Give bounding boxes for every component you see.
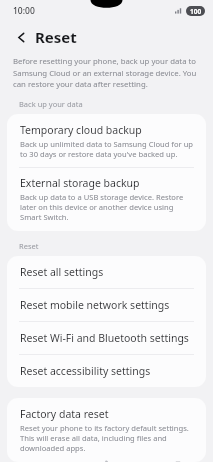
staticText: Reset accessibility settings	[20, 364, 151, 378]
staticText: 100	[190, 7, 202, 16]
staticText: Reset	[35, 27, 77, 47]
staticText: Factory data reset	[20, 407, 109, 421]
staticText: Back up unlimited data to Samsung Cloud …	[20, 139, 195, 159]
staticText: Reset	[19, 241, 39, 251]
staticText: Before resetting your phone, back up you…	[13, 56, 200, 89]
button[interactable]: Reset all settings	[7, 256, 206, 288]
staticText: External storage backup	[20, 176, 140, 190]
staticText: Reset your phone to its factory default …	[20, 423, 195, 453]
button[interactable]: Reset Wi-Fi and Bluetooth settings	[7, 322, 206, 354]
button[interactable]: External storage backup	[7, 168, 206, 231]
staticText: Reset mobile network settings	[20, 298, 170, 312]
button[interactable]: Reset mobile network settings	[7, 289, 206, 321]
button[interactable]: Back	[11, 27, 31, 47]
staticText: Reset Wi-Fi and Bluetooth settings	[20, 331, 189, 345]
staticText: Back up your data	[19, 99, 83, 109]
staticText: Back up data to a USB storage device. Re…	[20, 192, 195, 222]
staticText: Reset all settings	[20, 265, 104, 279]
button[interactable]: Factory data reset	[7, 398, 206, 462]
button[interactable]: Reset accessibility settings	[7, 355, 206, 387]
staticText: Temporary cloud backup	[20, 123, 142, 137]
staticText: 10:00	[13, 5, 35, 17]
button[interactable]: Temporary cloud backup	[7, 114, 206, 167]
